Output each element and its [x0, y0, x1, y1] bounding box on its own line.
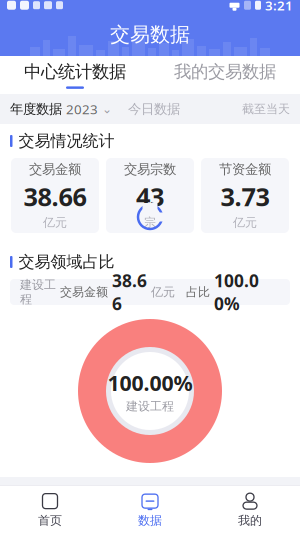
- staticText: 占比: [186, 285, 210, 299]
- staticText: 节资金额: [219, 161, 271, 177]
- staticText: 3.73: [220, 179, 269, 213]
- staticText: 我的交易数据: [174, 61, 276, 82]
- staticText: 2023: [66, 100, 98, 118]
- staticText: 年度数据: [10, 101, 62, 117]
- staticText: 数据: [138, 513, 162, 528]
- staticText: 100.00%: [107, 368, 192, 397]
- staticText: 中心统计数据: [24, 61, 126, 82]
- staticText: 100.00%: [214, 269, 259, 315]
- button[interactable]: 我的: [200, 486, 300, 534]
- staticText: 交易宗数: [124, 161, 176, 177]
- staticText: 建设工程: [126, 399, 174, 413]
- staticText: 43: [136, 179, 164, 213]
- button[interactable]: 年度数据: [10, 100, 112, 118]
- staticText: 亿元: [233, 215, 257, 230]
- button[interactable]: 我的交易数据: [150, 56, 300, 94]
- staticText: 我的: [238, 513, 262, 528]
- staticText: 38.66: [112, 269, 147, 315]
- staticText: 亿元: [151, 285, 175, 299]
- staticText: 亿元: [43, 215, 67, 230]
- staticText: 首页: [38, 513, 62, 528]
- button[interactable]: 数据: [100, 486, 200, 534]
- staticText: 截至当天: [242, 102, 290, 116]
- staticText: 交易金额: [60, 285, 108, 299]
- staticText: ⌄: [102, 102, 112, 116]
- button[interactable]: 中心统计数据: [0, 56, 150, 94]
- staticText: 今日数据: [128, 101, 180, 117]
- staticText: 宗: [144, 215, 156, 230]
- staticText: 交易数据: [110, 22, 190, 47]
- button[interactable]: 首页: [0, 486, 100, 534]
- staticText: 38.66: [23, 179, 86, 213]
- staticText: 3:21: [265, 0, 293, 14]
- button[interactable]: 今日数据: [128, 101, 180, 117]
- staticText: 建设工程: [20, 277, 56, 307]
- staticText: 交易金额: [29, 161, 81, 177]
- staticText: 交易领域占比: [18, 252, 114, 272]
- staticText: 交易情况统计: [18, 131, 114, 151]
